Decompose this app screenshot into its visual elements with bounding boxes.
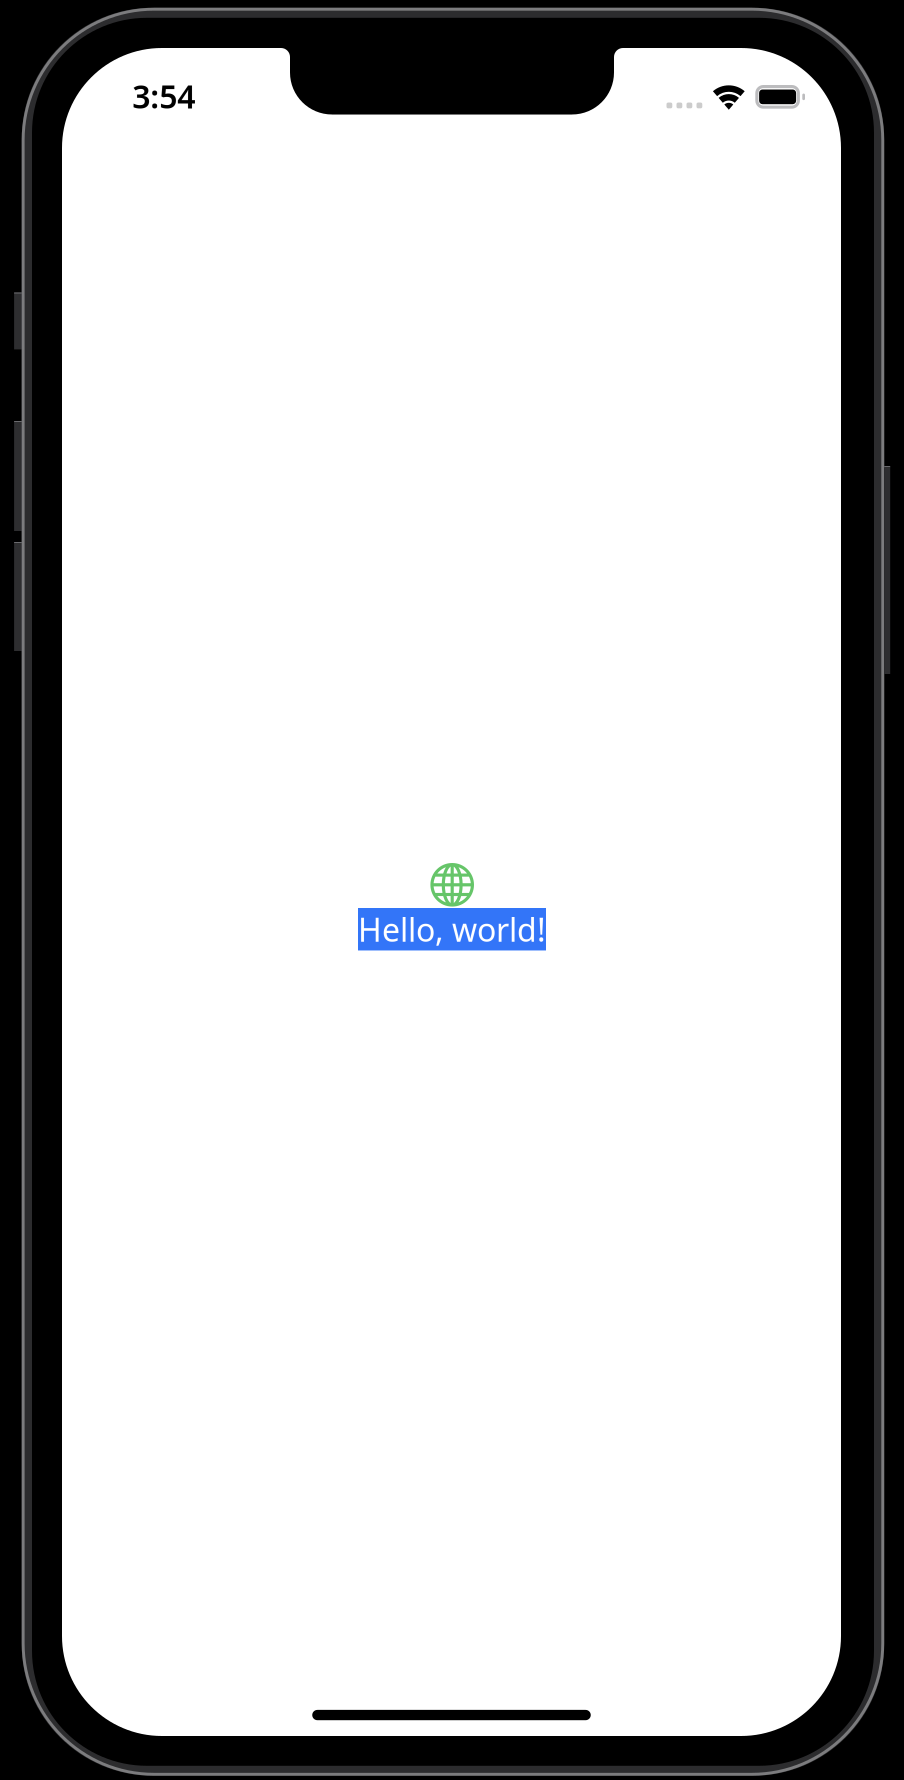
- staticText: Hello, world!: [358, 908, 546, 950]
- staticText: 3:54: [132, 75, 195, 117]
